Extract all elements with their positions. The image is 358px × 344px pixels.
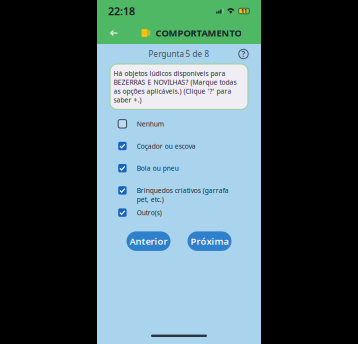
staticText: 22:18: [108, 4, 135, 18]
staticText: Brinquedos criativos (garrafa pet, etc.): [137, 186, 229, 204]
staticText: Há objetos lúdicos disponíveis para BEZE…: [113, 69, 236, 104]
button[interactable]: Coçador ou escova: [97, 142, 261, 164]
button[interactable]: Outro(s): [97, 208, 261, 230]
button[interactable]: Nenhum: [97, 119, 261, 142]
staticText: Próxima: [190, 235, 228, 247]
button[interactable]: Anterior: [126, 231, 170, 251]
staticText: COMPORTAMENTO: [155, 27, 241, 39]
button[interactable]: Ajuda: [238, 48, 249, 59]
staticText: Anterior: [129, 235, 167, 247]
button[interactable]: Brinquedos criativos (garrafa pet, etc.): [97, 186, 261, 208]
button[interactable]: Próxima: [187, 231, 231, 251]
staticText: Bola ou pneu: [137, 164, 179, 173]
button[interactable]: Voltar: [106, 24, 122, 42]
staticText: Nenhum: [137, 119, 164, 128]
staticText: 11: [241, 7, 247, 15]
staticText: Pergunta 5 de 8: [148, 49, 209, 59]
staticText: ?: [241, 49, 245, 59]
button[interactable]: Bola ou pneu: [97, 164, 261, 186]
staticText: Outro(s): [137, 208, 162, 217]
staticText: Coçador ou escova: [137, 142, 196, 150]
